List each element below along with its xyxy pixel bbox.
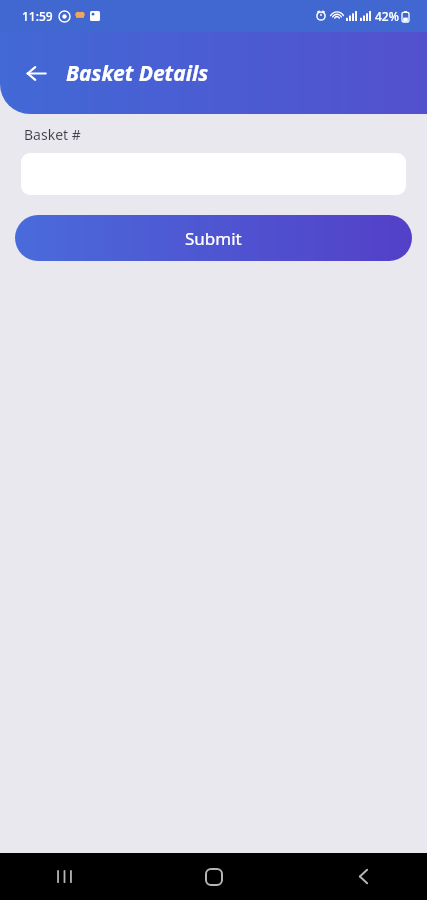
staticText: Basket Details xyxy=(66,59,209,88)
staticText: 42% xyxy=(375,8,399,24)
staticText: Submit xyxy=(185,227,242,250)
button[interactable]: Recent apps xyxy=(40,853,88,900)
button[interactable]: Submit xyxy=(15,215,412,261)
button[interactable]: Home xyxy=(190,853,238,900)
staticText: 11:59 xyxy=(22,8,53,24)
staticText: Basket # xyxy=(24,125,81,144)
button[interactable]: Back xyxy=(339,853,387,900)
button[interactable]: Back xyxy=(18,55,54,91)
